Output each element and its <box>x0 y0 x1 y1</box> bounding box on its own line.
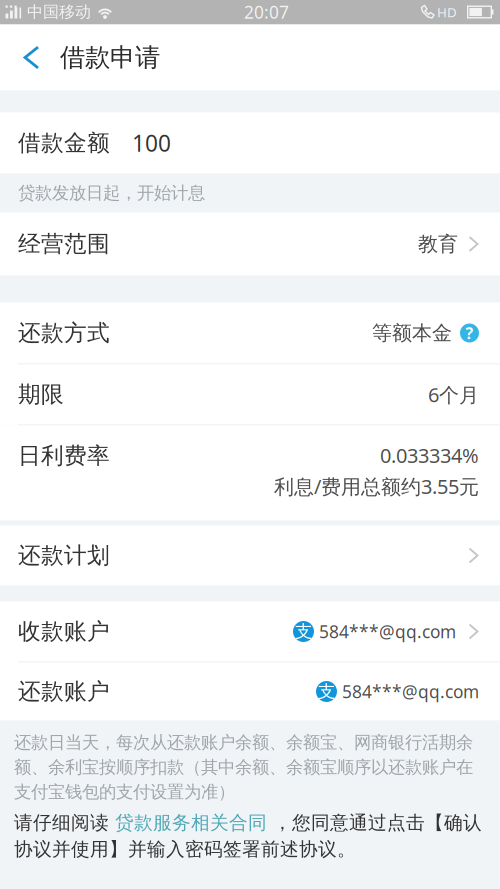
staticText: 借款申请 <box>60 41 160 73</box>
staticText: 还款账户 <box>18 677 110 706</box>
staticText: HD <box>437 3 457 21</box>
staticText: 6个月 <box>428 381 479 408</box>
staticText: 期限 <box>18 380 64 409</box>
staticText: 还款方式 <box>18 319 110 347</box>
staticText: 借款金额 <box>18 129 110 157</box>
staticText: 584***@qq.com <box>342 680 479 703</box>
staticText: 贷款发放日起，开始计息 <box>18 182 205 204</box>
staticText: 利息/费用总额约3.55元 <box>274 473 479 500</box>
button[interactable]: 还款计划 <box>0 525 500 585</box>
button[interactable]: 经营范围 <box>0 212 500 275</box>
staticText: 0.033334% <box>380 441 479 469</box>
staticText: 支 <box>318 681 335 702</box>
staticText: 100 <box>132 128 171 158</box>
button[interactable]: 收款账户 <box>0 601 500 661</box>
button[interactable]: 还款方式 <box>0 302 500 363</box>
staticText: 经营范围 <box>18 230 110 258</box>
staticText: 还款计划 <box>18 541 110 570</box>
staticText: 等额本金 <box>372 320 452 346</box>
staticText: 收款账户 <box>18 617 110 646</box>
staticText: 教育 <box>418 231 458 257</box>
staticText: 日利费率 <box>18 441 110 470</box>
staticText: 还款日当天，每次从还款账户余额、余额宝、网商银行活期余额、余利宝按顺序扣款（其中… <box>14 731 473 803</box>
staticText: 584***@qq.com <box>319 620 456 643</box>
staticText: ? <box>465 322 473 344</box>
staticText: 20:07 <box>244 0 289 24</box>
staticText: 中国移动 <box>27 2 91 22</box>
staticText: 请仔细阅读 贷款服务相关合同 ，您同意通过点击【确认协议并使用】并输入密码签署前… <box>14 811 482 861</box>
button[interactable]: Back <box>0 24 60 90</box>
staticText: 支 <box>295 621 312 642</box>
